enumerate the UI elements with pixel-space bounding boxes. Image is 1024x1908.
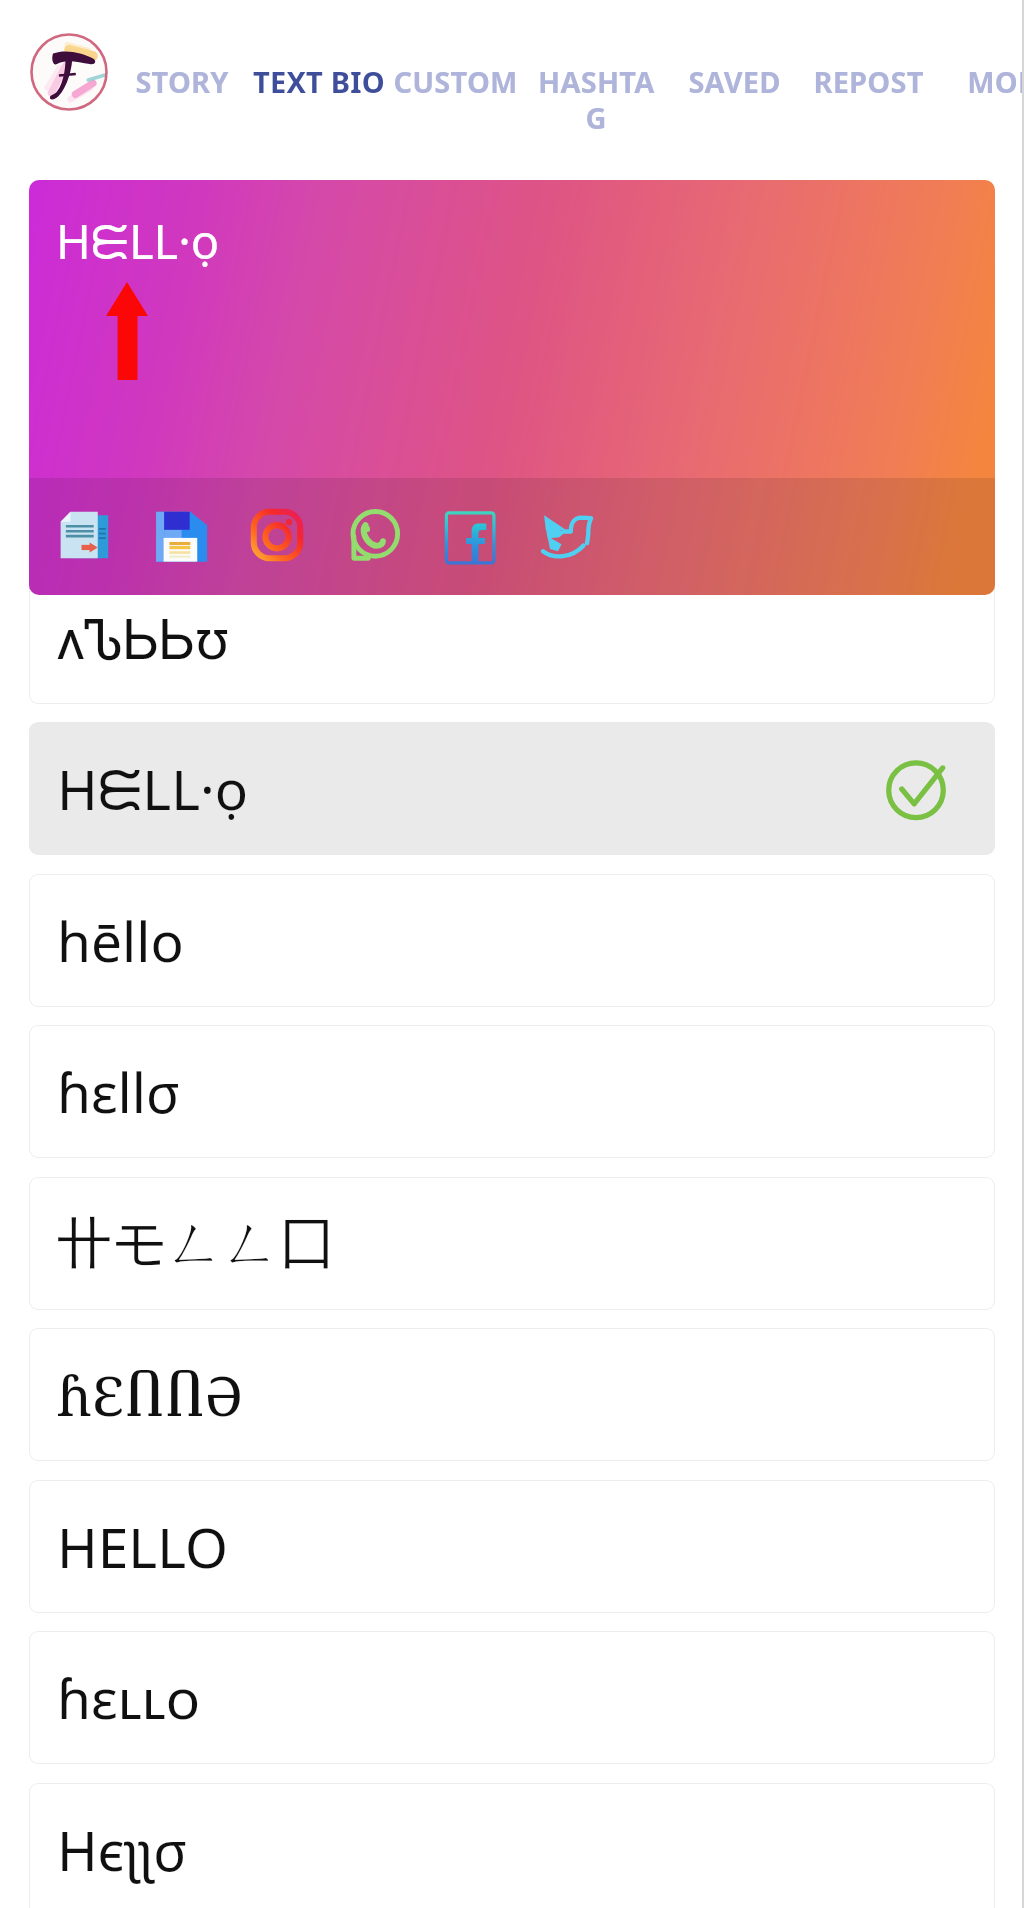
button[interactable]: ᴧᏖᏏᏏʊ: [29, 571, 995, 704]
button[interactable]: WhatsApp: [344, 506, 402, 564]
staticText: HASHTAG: [536, 62, 656, 138]
staticText: SAVED: [688, 62, 781, 101]
button[interactable]: HᙓLL·ọ: [29, 722, 995, 855]
button[interactable]: 卄モㄥㄥ囗: [29, 1177, 995, 1310]
staticText: TEXT BIO: [253, 62, 385, 101]
button[interactable]: STORY: [132, 62, 231, 142]
button[interactable]: Instagram: [248, 506, 306, 564]
staticText: HᙓLL·ọ: [57, 751, 248, 826]
staticText: CUSTOM: [393, 62, 518, 101]
button[interactable]: HELLO: [29, 1480, 995, 1613]
staticText: ᴧᏖᏏᏏʊ: [57, 600, 229, 675]
staticText: 卄モㄥㄥ囗: [57, 1209, 335, 1278]
staticText: REPOST: [813, 62, 924, 101]
button[interactable]: Facebook: [440, 506, 498, 564]
staticText: MORE: [967, 62, 1024, 101]
staticText: ɦɛʟʟᴏ: [57, 1660, 201, 1735]
button[interactable]: Save: [152, 506, 210, 564]
staticText: ɦƐႶႶƏ: [57, 1357, 243, 1432]
button[interactable]: App logo: [29, 32, 109, 112]
staticText: ɦɛllσ: [57, 1054, 180, 1129]
staticText: STORY: [135, 62, 229, 101]
button[interactable]: SAVED: [685, 62, 783, 142]
staticText: HᙓLL·ọ: [56, 209, 220, 273]
button[interactable]: Hєʅʅσ: [29, 1783, 995, 1908]
staticText: HELLO: [57, 1509, 228, 1584]
button[interactable]: hēllo: [29, 874, 995, 1007]
button[interactable]: ɦɛʟʟᴏ: [29, 1631, 995, 1764]
staticText: Hєʅʅσ: [57, 1812, 188, 1887]
button[interactable]: MORE: [964, 62, 1024, 142]
button[interactable]: REPOST: [811, 62, 926, 142]
button[interactable]: CUSTOM: [391, 62, 520, 142]
button[interactable]: Copy: [56, 506, 114, 564]
button[interactable]: TEXT BIO: [250, 62, 387, 142]
button[interactable]: ɦƐႶႶƏ: [29, 1328, 995, 1461]
button[interactable]: Twitter: [536, 506, 594, 564]
button[interactable]: ɦɛllσ: [29, 1025, 995, 1158]
staticText: hēllo: [57, 903, 184, 978]
button[interactable]: HASHTAG: [536, 62, 656, 142]
